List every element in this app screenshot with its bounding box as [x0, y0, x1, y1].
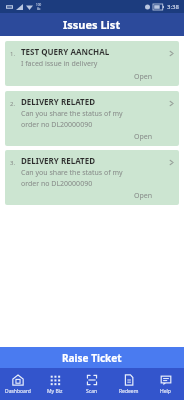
staticText: I faced issue in delivery — [21, 59, 98, 69]
staticText: Open — [21, 191, 152, 201]
staticText: DELIVERY RELATED — [21, 96, 96, 107]
button[interactable]: Raise Ticket — [0, 347, 184, 368]
button[interactable]: My Biz — [36, 368, 73, 400]
button[interactable]: Redeem — [110, 368, 147, 400]
button[interactable]: 2. — [5, 91, 179, 146]
staticText: Can you share the status of my order no … — [21, 168, 123, 188]
staticText: 3. — [10, 159, 21, 167]
button[interactable]: Dashboard — [0, 368, 36, 400]
button[interactable]: Help — [147, 368, 184, 400]
staticText: Raise Ticket — [62, 351, 122, 365]
staticText: 1. — [10, 50, 21, 58]
button[interactable]: 1. — [5, 41, 179, 86]
staticText: Help — [160, 388, 171, 395]
staticText: Issues List — [63, 17, 121, 32]
staticText: My Biz — [47, 388, 63, 395]
staticText: kb — [37, 7, 41, 11]
staticText: TEST QUERY AANCHAL — [21, 46, 110, 57]
staticText: Redeem — [119, 388, 139, 395]
button[interactable]: 3. — [5, 150, 179, 205]
staticText: 2. — [10, 100, 21, 108]
button[interactable]: Scan — [73, 368, 110, 400]
staticText: 3:38 — [167, 3, 179, 11]
staticText: DELIVERY RELATED — [21, 155, 96, 166]
staticText: 100 — [36, 3, 42, 7]
staticText: Dashboard — [5, 388, 31, 395]
staticText: Can you share the status of my order no … — [21, 109, 123, 129]
staticText: Open — [21, 72, 152, 82]
staticText: Open — [21, 132, 152, 142]
staticText: Scan — [86, 388, 98, 395]
